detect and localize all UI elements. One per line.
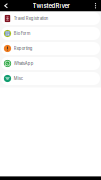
button[interactable]: Reporting [1,42,100,55]
staticText: WhatsApp [14,61,34,66]
button[interactable]: More options [90,0,101,11]
staticText: Reporting [14,46,33,51]
staticText: Misc [14,76,23,81]
staticText: Bio Form [14,31,31,36]
button[interactable]: Travel Registration [1,12,100,25]
button[interactable]: Misc [1,72,100,85]
button[interactable]: Bio Form [1,27,100,40]
staticText: TwistedRiver [33,2,70,9]
button[interactable]: Back [0,0,12,11]
button[interactable]: WhatsApp [1,57,100,70]
staticText: Travel Registration [14,16,48,21]
